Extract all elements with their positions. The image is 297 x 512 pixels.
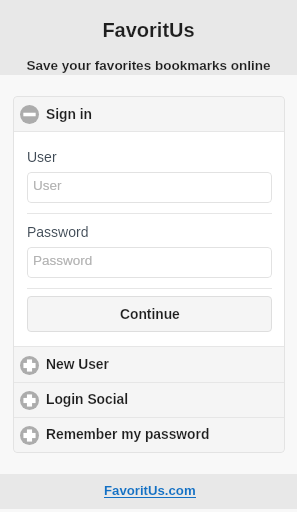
- button[interactable]: User: [27, 172, 272, 203]
- button[interactable]: Remember my password: [13, 418, 285, 453]
- staticText: Remember my password: [46, 427, 210, 442]
- button[interactable]: Login Social: [13, 383, 285, 418]
- staticText: FavoritUs: [0, 19, 297, 41]
- staticText: Password: [33, 253, 93, 268]
- staticText: FavoritUs.com: [104, 483, 196, 498]
- button[interactable]: FavoritUs.com: [104, 483, 196, 499]
- staticText: User: [27, 149, 57, 165]
- button[interactable]: Continue: [27, 296, 272, 332]
- staticText: Continue: [120, 307, 180, 322]
- staticText: User: [33, 178, 62, 193]
- staticText: Password: [27, 224, 89, 240]
- staticText: Save your favorites bookmarks online: [0, 58, 297, 73]
- staticText: Login Social: [46, 392, 129, 407]
- staticText: Sign in: [46, 107, 92, 122]
- button[interactable]: New User: [13, 347, 285, 383]
- button[interactable]: Sign in: [13, 96, 285, 132]
- button[interactable]: Password: [27, 247, 272, 278]
- staticText: New User: [46, 357, 109, 372]
